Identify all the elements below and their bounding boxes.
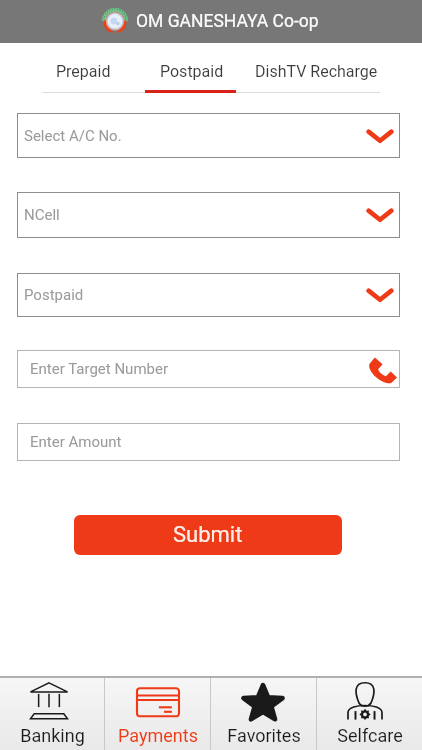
staticText: Favorites bbox=[227, 725, 301, 746]
button[interactable]: Selfcare bbox=[317, 678, 422, 750]
button[interactable]: Banking bbox=[0, 678, 104, 750]
button[interactable]: Enter Amount bbox=[17, 423, 400, 461]
button[interactable]: DishTV Recharge bbox=[239, 60, 394, 83]
button[interactable]: NCell bbox=[17, 192, 400, 238]
other: Open dropdown bbox=[367, 285, 393, 305]
button[interactable]: Postpaid bbox=[17, 273, 400, 317]
staticText: NCell bbox=[24, 206, 60, 224]
staticText: Enter Target Number bbox=[30, 360, 168, 378]
staticText: Payments bbox=[118, 725, 198, 746]
staticText: Submit bbox=[173, 522, 243, 548]
button[interactable]: Enter Target Number bbox=[17, 350, 400, 388]
staticText: Prepaid bbox=[56, 62, 111, 81]
button[interactable]: Prepaid bbox=[40, 60, 127, 83]
staticText: Banking bbox=[20, 725, 85, 746]
button[interactable]: Favorites bbox=[211, 678, 316, 750]
staticText: Selfcare bbox=[337, 725, 403, 746]
other: Pick contact bbox=[367, 357, 397, 384]
button[interactable]: Postpaid bbox=[144, 60, 240, 83]
other: Open dropdown bbox=[367, 126, 393, 146]
staticText: Postpaid bbox=[24, 286, 84, 304]
button[interactable]: Select A/C No. bbox=[17, 113, 400, 158]
staticText: DishTV Recharge bbox=[255, 62, 378, 81]
button[interactable]: Payments bbox=[105, 678, 210, 750]
staticText: Select A/C No. bbox=[24, 127, 122, 145]
button[interactable]: Submit bbox=[74, 515, 342, 555]
staticText: Postpaid bbox=[160, 62, 224, 81]
other: Open dropdown bbox=[367, 205, 393, 225]
staticText: OM GANESHAYA Co-op bbox=[136, 11, 319, 32]
staticText: Enter Amount bbox=[30, 433, 122, 451]
